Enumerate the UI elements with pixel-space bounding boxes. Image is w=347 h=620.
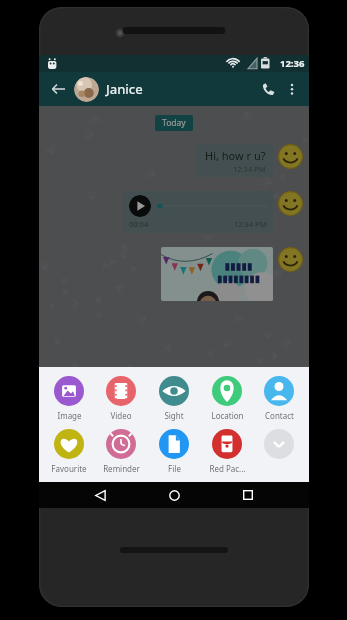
staticText: Location [211,410,244,421]
button[interactable]: Recents [235,482,261,508]
staticText: Contact [265,410,294,421]
button[interactable]: Back [87,482,113,508]
button[interactable]: Play voice message [129,195,151,217]
staticText: Video [110,410,132,421]
staticText: Today [162,117,186,129]
button[interactable]: Video [96,376,146,421]
button[interactable]: Image [44,376,94,421]
staticText: Reminder [103,463,140,474]
button[interactable]: Back [45,76,71,102]
button[interactable]: Favourite [44,429,94,474]
button[interactable]: Collapse [254,429,304,459]
staticText: 12:34 PM [234,219,267,229]
button[interactable]: Home [161,482,187,508]
staticText: 12:34 PM [233,164,266,174]
staticText: Sight [164,410,184,421]
staticText: Image [57,410,82,421]
button[interactable]: Birthday photo [161,247,273,301]
button[interactable] [74,77,99,102]
button[interactable]: Janice [106,80,255,98]
button[interactable]: Call [255,76,281,102]
button[interactable]: Location [202,376,252,421]
button[interactable]: More options [281,78,303,100]
button[interactable]: Sight [149,376,199,421]
button[interactable]: Contact [254,376,304,421]
staticText: 12:36 [280,57,305,70]
staticText: Red Pac... [209,463,246,474]
button[interactable]: File [149,429,199,474]
staticText: Favourite [51,463,87,474]
button[interactable]: Reminder [96,429,146,474]
staticText: 00:04 [129,219,149,229]
staticText: Hi, how r u? [205,148,266,163]
staticText: File [168,463,181,474]
button[interactable]: Red Pac... [202,429,252,474]
